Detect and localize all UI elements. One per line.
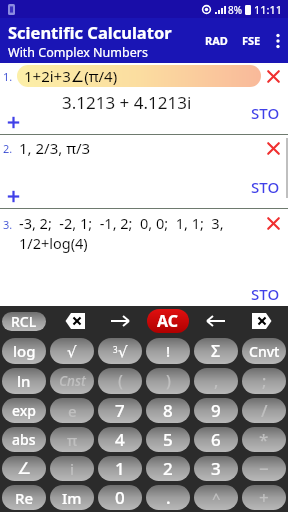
button[interactable]: 3: [98, 338, 142, 364]
button[interactable]: STO: [245, 175, 286, 199]
button[interactable]: Cnst: [50, 368, 94, 394]
button[interactable]: AC: [147, 309, 189, 333]
button[interactable]: ): [146, 368, 190, 394]
staticText: AC: [157, 310, 179, 332]
staticText: STO: [251, 177, 280, 197]
staticText: ln: [17, 371, 31, 391]
staticText: 2.: [3, 141, 13, 156]
button[interactable]: Move left: [192, 306, 240, 336]
button[interactable]: Delete entry: [261, 211, 286, 236]
button[interactable]: 0: [98, 485, 142, 510]
staticText: .: [166, 486, 171, 509]
staticText: 3.1213 + 4.1213i: [62, 91, 192, 114]
staticText: RCL: [11, 312, 37, 331]
button[interactable]: Add entry: [2, 111, 25, 134]
staticText: 8: [163, 399, 173, 422]
staticText: i: [70, 459, 75, 479]
staticText: Cnst: [59, 372, 86, 390]
staticText: √: [67, 343, 77, 360]
staticText: STO: [251, 284, 280, 304]
button[interactable]: FSE: [235, 21, 268, 60]
staticText: FSE: [242, 33, 261, 48]
button[interactable]: Backspace: [240, 306, 288, 336]
button[interactable]: 7: [98, 398, 142, 423]
button[interactable]: Cnvt: [242, 338, 286, 364]
button[interactable]: Σ: [194, 338, 238, 364]
button[interactable]: STO: [245, 282, 286, 306]
staticText: e: [68, 401, 77, 421]
staticText: 6: [211, 428, 221, 451]
button[interactable]: Delete entry: [261, 64, 286, 89]
staticText: +: [259, 486, 269, 509]
button[interactable]: exp: [2, 398, 46, 423]
staticText: 8%: [228, 3, 243, 17]
staticText: (: [118, 370, 123, 392]
button[interactable]: 3.: [0, 209, 288, 253]
button[interactable]: Move right: [96, 306, 144, 336]
button[interactable]: *: [242, 427, 286, 452]
staticText: log: [13, 341, 36, 361]
staticText: 0: [115, 486, 125, 509]
button[interactable]: STO: [245, 101, 286, 125]
button[interactable]: π: [50, 427, 94, 452]
staticText: Im: [62, 488, 82, 508]
button[interactable]: /: [242, 398, 286, 423]
staticText: 4: [115, 428, 125, 451]
button[interactable]: ^: [194, 485, 238, 510]
staticText: √: [118, 343, 128, 360]
staticText: 5: [163, 428, 173, 451]
staticText: -3, 2; -2, 1; -1, 2; 0, 0; 1, 1; 3,: [19, 213, 224, 233]
button[interactable]: abs: [2, 427, 46, 452]
staticText: !: [166, 341, 171, 361]
button[interactable]: .: [146, 485, 190, 510]
staticText: Cnvt: [249, 342, 280, 361]
staticText: 2: [163, 457, 173, 480]
staticText: 1: [115, 457, 125, 480]
staticText: 9: [211, 399, 221, 422]
staticText: RAD: [205, 33, 228, 48]
button[interactable]: ∠: [2, 456, 46, 481]
staticText: /: [261, 399, 268, 422]
staticText: abs: [12, 430, 36, 449]
button[interactable]: 4: [98, 427, 142, 452]
button[interactable]: (: [98, 368, 142, 394]
staticText: ,: [214, 370, 219, 392]
button[interactable]: 1: [98, 456, 142, 481]
staticText: 1.: [3, 69, 13, 84]
button[interactable]: 9: [194, 398, 238, 423]
button[interactable]: 1.: [0, 63, 288, 89]
button[interactable]: !: [146, 338, 190, 364]
button[interactable]: +: [242, 485, 286, 510]
staticText: STO: [251, 103, 280, 123]
button[interactable]: e: [50, 398, 94, 423]
button[interactable]: RCL: [2, 312, 46, 331]
button[interactable]: Add entry: [2, 185, 25, 208]
button[interactable]: −: [242, 456, 286, 481]
button[interactable]: ;: [242, 368, 286, 394]
staticText: With Complex Numbers: [8, 44, 148, 61]
button[interactable]: ,: [194, 368, 238, 394]
staticText: ): [166, 370, 171, 392]
staticText: Scientific Calculator: [8, 21, 172, 43]
button[interactable]: More options: [268, 23, 288, 59]
button[interactable]: 3: [194, 456, 238, 481]
button[interactable]: Backspace: [48, 306, 96, 336]
staticText: −: [259, 457, 269, 480]
button[interactable]: 2.: [0, 135, 288, 161]
button[interactable]: i: [50, 456, 94, 481]
staticText: 3: [113, 344, 118, 355]
staticText: exp: [12, 401, 37, 420]
button[interactable]: log: [2, 338, 46, 364]
button[interactable]: √: [50, 338, 94, 364]
button[interactable]: RAD: [198, 21, 235, 60]
button[interactable]: 8: [146, 398, 190, 423]
staticText: ∠: [17, 459, 32, 478]
button[interactable]: Re: [2, 485, 46, 510]
button[interactable]: 2: [146, 456, 190, 481]
button[interactable]: Delete entry: [261, 136, 286, 161]
button[interactable]: Im: [50, 485, 94, 510]
button[interactable]: ln: [2, 368, 46, 394]
staticText: 11:11: [254, 2, 283, 17]
button[interactable]: 6: [194, 427, 238, 452]
button[interactable]: 5: [146, 427, 190, 452]
